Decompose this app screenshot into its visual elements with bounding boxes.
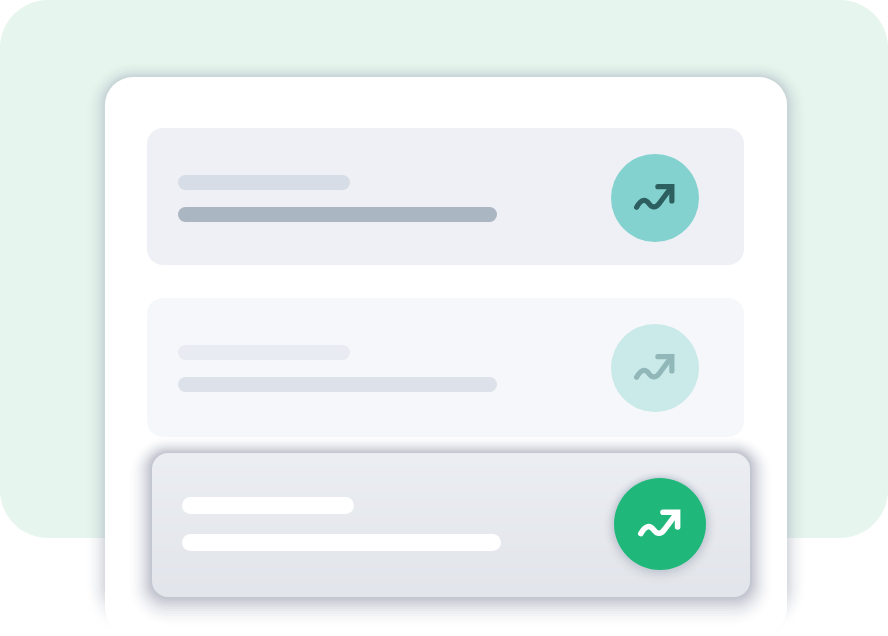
button[interactable]: Trending up [147, 128, 744, 265]
button[interactable]: Trending up [614, 154, 702, 242]
button[interactable]: Trending up [614, 324, 702, 412]
button[interactable]: Trending up [614, 478, 706, 570]
button[interactable]: Trending up [147, 298, 744, 437]
button[interactable]: Trending up [152, 453, 750, 597]
